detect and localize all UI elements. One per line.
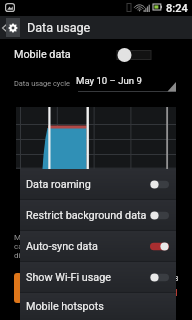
button[interactable]: Show Wi-Fi usage	[20, 262, 176, 293]
button[interactable]: Navigate up	[0, 16, 192, 39]
staticText: carrier's data accounting may	[14, 242, 119, 251]
staticText: Data usage cycle	[14, 79, 70, 88]
button[interactable]: Data usage cycle	[0, 70, 192, 96]
staticText: Mobile data	[14, 48, 71, 61]
staticText: Show Wi-Fi usage	[26, 271, 111, 284]
button[interactable]: Mobile data	[0, 39, 192, 70]
button[interactable]: Restrict background data	[20, 200, 176, 231]
staticText: Auto-sync data	[26, 240, 98, 253]
staticText: Mobile hotspots	[26, 300, 104, 313]
staticText: 8:24	[166, 2, 188, 15]
staticText: differ.	[14, 251, 35, 260]
staticText: Measured by your phone. Your	[14, 233, 122, 242]
staticText: May 10 – Jun 9	[76, 75, 142, 86]
staticText: Restrict background data	[26, 209, 147, 222]
staticText: Data roaming	[26, 178, 91, 191]
button[interactable]: Mobile hotspots	[20, 293, 176, 320]
button[interactable]: Data roaming	[20, 169, 176, 200]
staticText: Data usage	[27, 20, 91, 35]
staticText: 225MB	[153, 274, 179, 283]
button[interactable]: Auto-sync data	[20, 231, 176, 262]
